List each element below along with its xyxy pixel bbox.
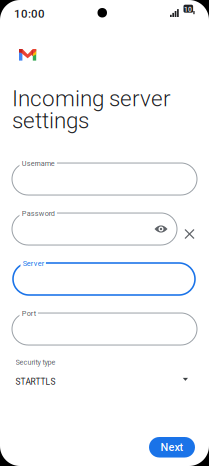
staticText: settings: [12, 107, 89, 134]
staticText: 100: [184, 6, 192, 21]
staticText: STARTTLS: [15, 377, 55, 387]
button[interactable]: Next: [149, 437, 195, 457]
button[interactable]: Security type: [15, 358, 190, 387]
staticText: 10:00: [14, 7, 45, 20]
staticText: Server: [23, 259, 44, 268]
button[interactable]: Show password: [150, 218, 172, 240]
staticText: Username: [22, 159, 55, 168]
staticText: Port: [22, 309, 36, 318]
staticText: Security type: [15, 358, 55, 366]
staticText: Incoming server: [12, 85, 171, 112]
button[interactable]: Clear password: [179, 224, 199, 244]
staticText: Next: [160, 441, 183, 454]
staticText: Password: [22, 209, 55, 218]
